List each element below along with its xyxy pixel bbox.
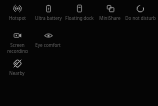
staticText: MiniShare — [99, 15, 121, 21]
button[interactable]: Do not disturb — [124, 0, 156, 26]
button[interactable]: Floating dock — [63, 0, 95, 26]
button[interactable]: MiniShare — [94, 0, 126, 26]
staticText: Hotspot — [9, 15, 26, 21]
staticText: Screen — [10, 42, 25, 48]
staticText: Ultra battery — [35, 15, 62, 21]
button[interactable]: Hotspot — [1, 0, 33, 26]
staticText: Floating dock — [65, 15, 94, 21]
staticText: recording — [7, 48, 28, 53]
button[interactable]: Nearby — [1, 55, 33, 81]
button[interactable]: Ultra battery saver — [32, 0, 64, 26]
staticText: Nearby — [9, 70, 25, 76]
staticText: Do not disturb — [125, 15, 156, 21]
button[interactable]: Eye comfort — [32, 27, 64, 53]
staticText: Eye comfort — [35, 42, 61, 48]
button[interactable]: Screen recording — [1, 27, 33, 53]
